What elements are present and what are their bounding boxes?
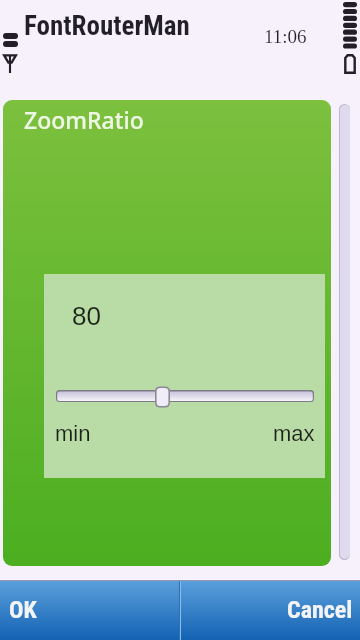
button[interactable]: Zoom ratio slider: [56, 386, 314, 408]
button[interactable]: ZoomRatio: [3, 100, 331, 566]
other: Signal strength: [3, 33, 18, 47]
staticText: OK: [9, 596, 37, 624]
staticText: ZoomRatio: [24, 104, 144, 135]
staticText: 11:06: [264, 26, 307, 47]
staticText: FontRouterMan: [24, 10, 190, 42]
other: Battery: [344, 54, 357, 75]
other: Battery level: [343, 2, 357, 47]
staticText: max: [273, 421, 315, 446]
button[interactable]: Cancel: [181, 581, 360, 640]
other: Network: [3, 54, 17, 74]
staticText: 80: [72, 301, 101, 330]
button[interactable]: OK: [0, 581, 179, 640]
staticText: Cancel: [287, 596, 353, 624]
staticText: min: [55, 421, 91, 446]
